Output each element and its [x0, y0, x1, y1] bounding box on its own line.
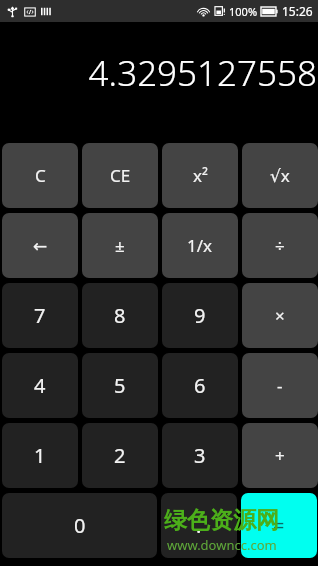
button[interactable]: x²: [162, 143, 238, 208]
button[interactable]: 8: [82, 283, 158, 348]
button[interactable]: 1: [2, 423, 78, 488]
button[interactable]: =: [241, 493, 317, 558]
button[interactable]: ÷: [242, 213, 318, 278]
staticText: +: [275, 444, 285, 467]
staticText: 1: [34, 442, 46, 469]
button[interactable]: √x: [242, 143, 318, 208]
button[interactable]: .: [161, 493, 237, 558]
staticText: 绿色资源网: [164, 506, 279, 535]
button[interactable]: 6: [162, 353, 238, 418]
staticText: 4: [34, 372, 46, 399]
staticText: 100%: [229, 4, 258, 19]
button[interactable]: 3: [162, 423, 238, 488]
staticText: .: [196, 512, 202, 539]
staticText: ±: [115, 234, 125, 257]
button[interactable]: ×: [242, 283, 318, 348]
button[interactable]: 7: [2, 283, 78, 348]
staticText: 8: [114, 302, 126, 329]
staticText: 7: [34, 302, 46, 329]
staticText: 2: [114, 442, 126, 469]
staticText: √x: [270, 164, 290, 187]
button[interactable]: +: [242, 423, 318, 488]
staticText: 4.3295127558: [88, 49, 317, 97]
staticText: 9: [194, 302, 206, 329]
button[interactable]: 5: [82, 353, 158, 418]
staticText: C: [35, 164, 46, 187]
button[interactable]: 2: [82, 423, 158, 488]
staticText: -: [277, 374, 283, 397]
button[interactable]: ±: [82, 213, 158, 278]
button[interactable]: -: [242, 353, 318, 418]
staticText: x²: [193, 164, 208, 187]
staticText: CE: [110, 164, 131, 187]
button[interactable]: 0: [2, 493, 157, 558]
staticText: =: [273, 512, 285, 539]
staticText: ×: [275, 304, 285, 327]
button[interactable]: CE: [82, 143, 158, 208]
staticText: 15:26: [282, 3, 313, 19]
button[interactable]: 1/x: [162, 213, 238, 278]
staticText: 1/x: [187, 234, 213, 257]
staticText: 6: [194, 372, 206, 399]
staticText: ÷: [275, 234, 285, 257]
staticText: 5: [114, 372, 126, 399]
staticText: ←: [33, 236, 48, 256]
staticText: 3: [194, 442, 206, 469]
staticText: 0: [74, 512, 86, 539]
button[interactable]: 4: [2, 353, 78, 418]
button[interactable]: 9: [162, 283, 238, 348]
staticText: www.downcc.com: [167, 536, 277, 554]
button[interactable]: C: [2, 143, 78, 208]
button[interactable]: Backspace: [2, 213, 78, 278]
